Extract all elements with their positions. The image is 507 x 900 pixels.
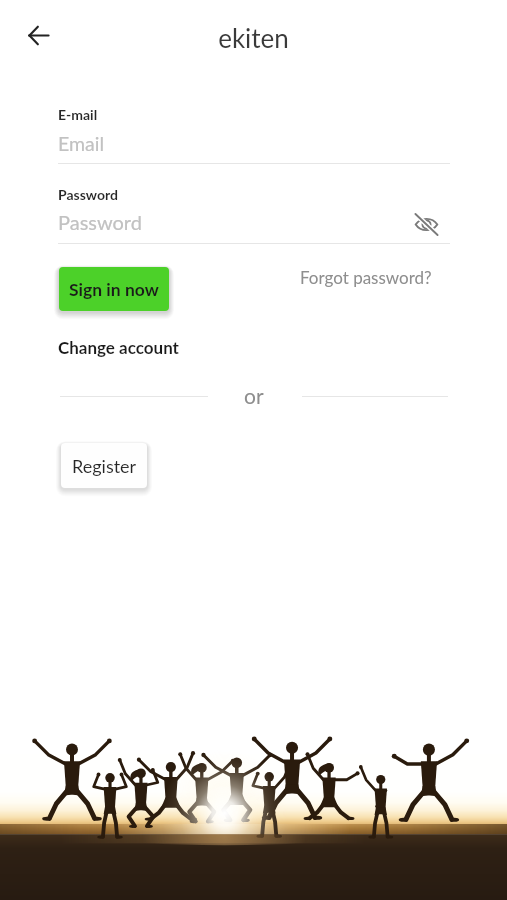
button[interactable]: Register (61, 443, 147, 488)
staticText: or (244, 383, 264, 408)
button[interactable]: Forgot password? (300, 267, 432, 287)
staticText: Password (58, 186, 118, 203)
button[interactable]: Sign in now (59, 267, 169, 311)
staticText: ekiten (0, 22, 507, 53)
button[interactable]: Back (16, 13, 60, 57)
button[interactable]: Change account (58, 337, 179, 357)
staticText: Email (58, 132, 104, 155)
staticText: Sign in now (69, 279, 159, 300)
staticText: Register (72, 455, 137, 477)
staticText: Password (58, 210, 142, 234)
button[interactable]: Show password (410, 208, 442, 240)
staticText: E-mail (58, 106, 98, 123)
